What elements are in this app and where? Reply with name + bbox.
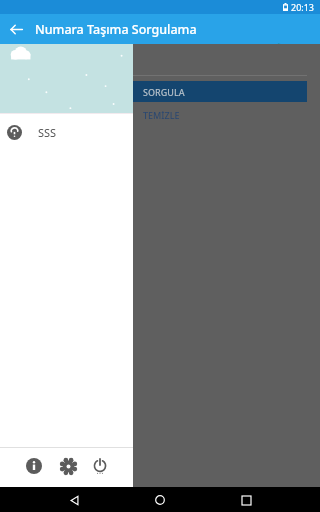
button[interactable]: Back <box>0 14 32 44</box>
button[interactable]: Power <box>88 454 112 478</box>
button[interactable]: Settings <box>56 454 80 478</box>
button[interactable]: SSS <box>0 114 320 150</box>
staticText: TEMİZLE <box>143 109 180 121</box>
button[interactable]: TEMİZLE <box>133 102 307 127</box>
staticText: Numara Taşıma Sorgulama <box>35 21 197 38</box>
button[interactable]: Back <box>62 488 86 512</box>
button[interactable]: SORGULA <box>133 81 307 102</box>
button[interactable]: Info <box>22 454 46 478</box>
button[interactable]: Home <box>148 488 172 512</box>
button[interactable]: Recents <box>234 488 258 512</box>
staticText: 20:13 <box>291 1 315 13</box>
staticText: SORGULA <box>143 86 185 98</box>
staticText: SSS <box>38 125 57 140</box>
